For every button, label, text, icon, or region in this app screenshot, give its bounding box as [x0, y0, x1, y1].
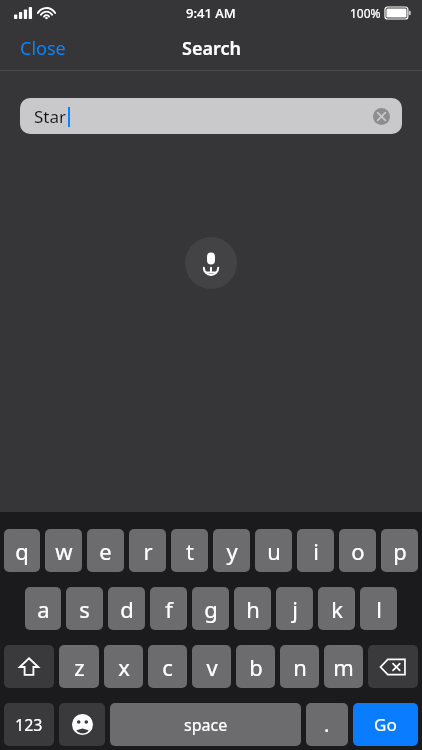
staticText: l [376, 594, 382, 624]
staticText: Close [20, 36, 66, 61]
button[interactable]: Voice search [185, 237, 237, 289]
staticText: c [162, 652, 173, 682]
staticText: w [55, 536, 73, 566]
staticText: p [393, 536, 407, 566]
staticText: n [293, 652, 307, 682]
button[interactable]: o [339, 529, 376, 572]
button[interactable]: x [104, 645, 143, 688]
staticText: x [118, 652, 130, 682]
button[interactable]: g [192, 587, 229, 630]
button[interactable]: a [25, 587, 61, 630]
staticText: . [324, 711, 330, 738]
button[interactable]: Clear text [370, 105, 392, 127]
staticText: y [226, 536, 238, 566]
button[interactable]: r [129, 529, 166, 572]
staticText: r [143, 536, 153, 566]
button[interactable]: s [66, 587, 103, 630]
button[interactable]: Star [20, 98, 402, 134]
button[interactable]: p [381, 529, 418, 572]
staticText: t [186, 536, 194, 566]
staticText: u [267, 536, 281, 566]
button[interactable]: Go [353, 703, 418, 746]
button[interactable]: j [276, 587, 313, 630]
staticText: e [99, 536, 112, 566]
button[interactable]: y [213, 529, 250, 572]
button[interactable]: Close [8, 30, 78, 67]
button[interactable]: space [110, 703, 301, 746]
button[interactable]: m [324, 645, 363, 688]
staticText: Go [374, 713, 397, 736]
button[interactable]: f [150, 587, 187, 630]
button[interactable]: z [59, 645, 99, 688]
button[interactable]: Backspace [368, 645, 418, 688]
button[interactable]: Shift [4, 645, 54, 688]
button[interactable]: 123 [4, 703, 54, 746]
button[interactable]: q [4, 529, 40, 572]
button[interactable]: c [148, 645, 187, 688]
button[interactable]: e [87, 529, 124, 572]
button[interactable]: v [192, 645, 231, 688]
button[interactable]: Emoji [59, 703, 105, 746]
button[interactable]: i [297, 529, 334, 572]
staticText: k [331, 594, 343, 624]
button[interactable]: h [234, 587, 271, 630]
button[interactable]: k [318, 587, 355, 630]
button[interactable]: b [236, 645, 275, 688]
staticText: h [246, 594, 260, 624]
button[interactable]: t [171, 529, 208, 572]
button[interactable]: . [306, 703, 348, 746]
button[interactable]: l [360, 587, 397, 630]
staticText: i [313, 536, 319, 566]
button[interactable]: u [255, 529, 292, 572]
staticText: v [206, 652, 218, 682]
staticText: a [37, 594, 50, 624]
staticText: b [249, 652, 263, 682]
staticText: s [79, 594, 90, 624]
button[interactable]: d [108, 587, 145, 630]
button[interactable]: n [280, 645, 319, 688]
staticText: o [351, 536, 365, 566]
staticText: m [333, 652, 354, 682]
staticText: space [184, 714, 228, 736]
staticText: Star [34, 105, 67, 128]
staticText: f [165, 594, 173, 624]
staticText: z [74, 652, 85, 682]
staticText: 123 [15, 714, 43, 736]
staticText: d [120, 594, 134, 624]
staticText: q [15, 536, 29, 566]
staticText: 9:41 AM [186, 4, 236, 22]
staticText: Search [182, 36, 241, 61]
staticText: 100% [350, 5, 381, 21]
staticText: g [204, 594, 218, 624]
staticText: j [292, 594, 298, 624]
button[interactable]: w [45, 529, 82, 572]
